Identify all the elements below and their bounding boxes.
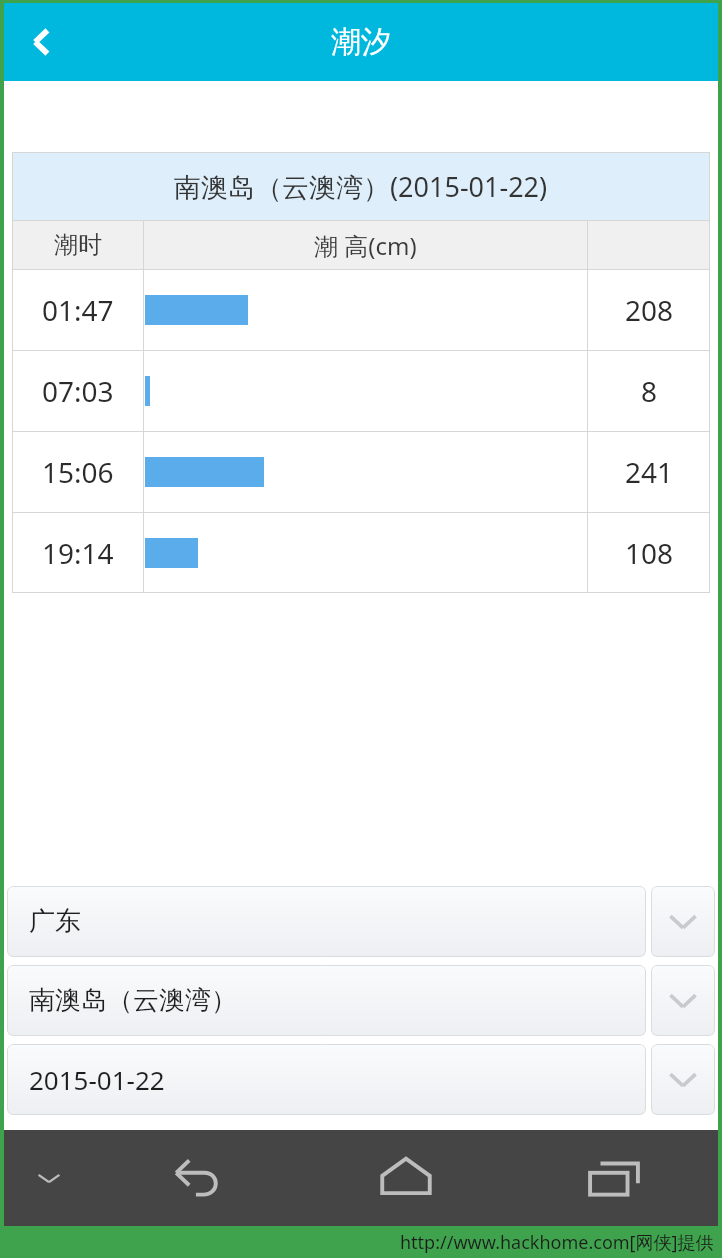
- staticText: 108: [625, 534, 674, 572]
- button[interactable]: 01:47: [12, 270, 710, 350]
- other: Expand 2015-01-22: [651, 1044, 715, 1115]
- staticText: 241: [625, 453, 674, 491]
- button[interactable]: 南澳岛（云澳湾）: [7, 963, 715, 1038]
- staticText: 潮时: [54, 230, 102, 260]
- staticText: 广东: [29, 905, 81, 938]
- staticText: 208: [625, 291, 674, 329]
- staticText: 07:03: [42, 372, 114, 410]
- staticText: 2015-01-22: [29, 1062, 165, 1097]
- button[interactable]: Hide keyboard: [4, 1130, 94, 1226]
- staticText: 潮 高(cm): [314, 229, 417, 262]
- button[interactable]: 15:06: [12, 432, 710, 512]
- button[interactable]: 2015-01-22: [7, 1042, 715, 1117]
- button[interactable]: Back: [4, 4, 80, 80]
- staticText: 南澳岛（云澳湾）: [29, 984, 237, 1017]
- staticText: 8: [641, 372, 658, 410]
- staticText: 15:06: [42, 453, 114, 491]
- other: Expand 南澳岛（云澳湾）: [651, 965, 715, 1036]
- button[interactable]: Home: [302, 1130, 510, 1226]
- staticText: 南澳岛（云澳湾）(2015-01-22): [174, 168, 548, 205]
- button[interactable]: Back: [94, 1130, 302, 1226]
- button[interactable]: 19:14: [12, 513, 710, 593]
- button[interactable]: 07:03: [12, 351, 710, 431]
- staticText: 19:14: [42, 534, 114, 572]
- button[interactable]: 广东: [7, 884, 715, 959]
- staticText: 潮汐: [331, 23, 391, 61]
- button[interactable]: Recent apps: [510, 1130, 718, 1226]
- staticText: http://www.hackhome.com[网侠]提供: [400, 1230, 714, 1255]
- staticText: 01:47: [42, 291, 114, 329]
- other: Expand 广东: [651, 886, 715, 957]
